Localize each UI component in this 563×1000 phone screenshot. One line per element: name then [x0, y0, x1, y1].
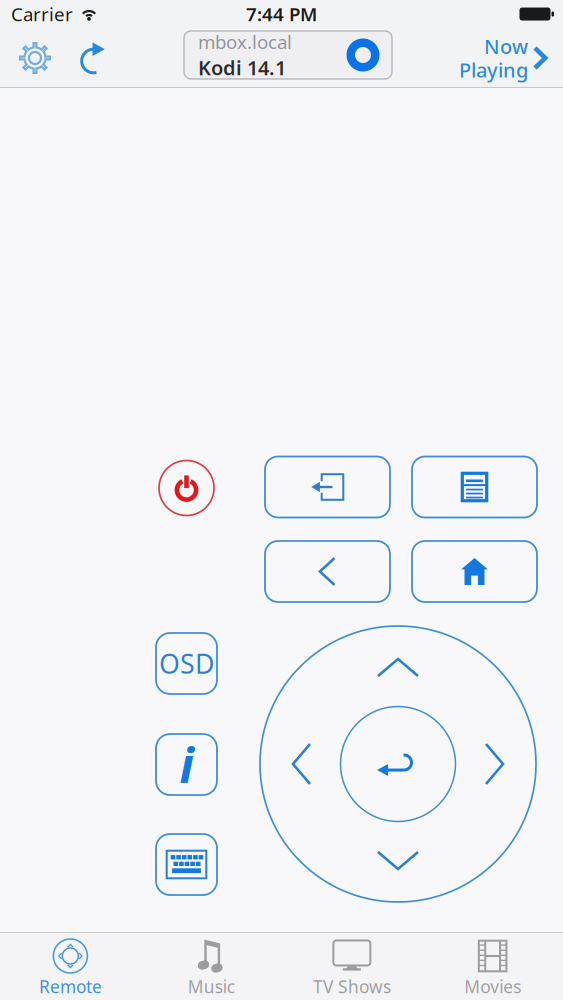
button[interactable]: Settings	[11, 35, 59, 81]
button[interactable]: Up	[364, 644, 432, 692]
button[interactable]: Refresh	[72, 36, 118, 80]
button[interactable]: Down	[364, 836, 432, 884]
staticText: OSD	[159, 646, 214, 681]
staticText: mbox.local	[198, 29, 292, 54]
button[interactable]: Left	[278, 730, 326, 798]
staticText: Now	[484, 33, 528, 59]
button[interactable]: TV Shows	[281, 930, 422, 1000]
button[interactable]: Info	[156, 734, 217, 795]
button[interactable]: OSD	[156, 633, 217, 694]
button[interactable]: Keyboard	[156, 834, 217, 895]
button[interactable]: Menu	[412, 456, 537, 517]
button[interactable]: Music	[141, 930, 282, 1000]
button[interactable]: Right	[470, 730, 518, 798]
button[interactable]: Power	[155, 457, 217, 519]
button[interactable]: Movies	[422, 930, 563, 1000]
button[interactable]: Exit	[265, 456, 390, 517]
staticText: Kodi 14.1	[198, 54, 286, 81]
staticText: TV Shows	[313, 975, 391, 998]
button[interactable]: Now	[459, 29, 549, 87]
staticText: 7:44 PM	[246, 2, 317, 26]
button[interactable]: Remote	[0, 930, 141, 1000]
staticText: Movies	[464, 975, 521, 998]
staticText: Carrier	[11, 2, 73, 26]
staticText: Remote	[39, 975, 102, 998]
staticText: Music	[188, 975, 235, 998]
button[interactable]: Home	[412, 541, 537, 602]
staticText: i	[179, 733, 193, 796]
staticText: Playing	[459, 56, 528, 83]
button[interactable]: Select	[350, 724, 446, 804]
button[interactable]: Back	[265, 541, 390, 602]
